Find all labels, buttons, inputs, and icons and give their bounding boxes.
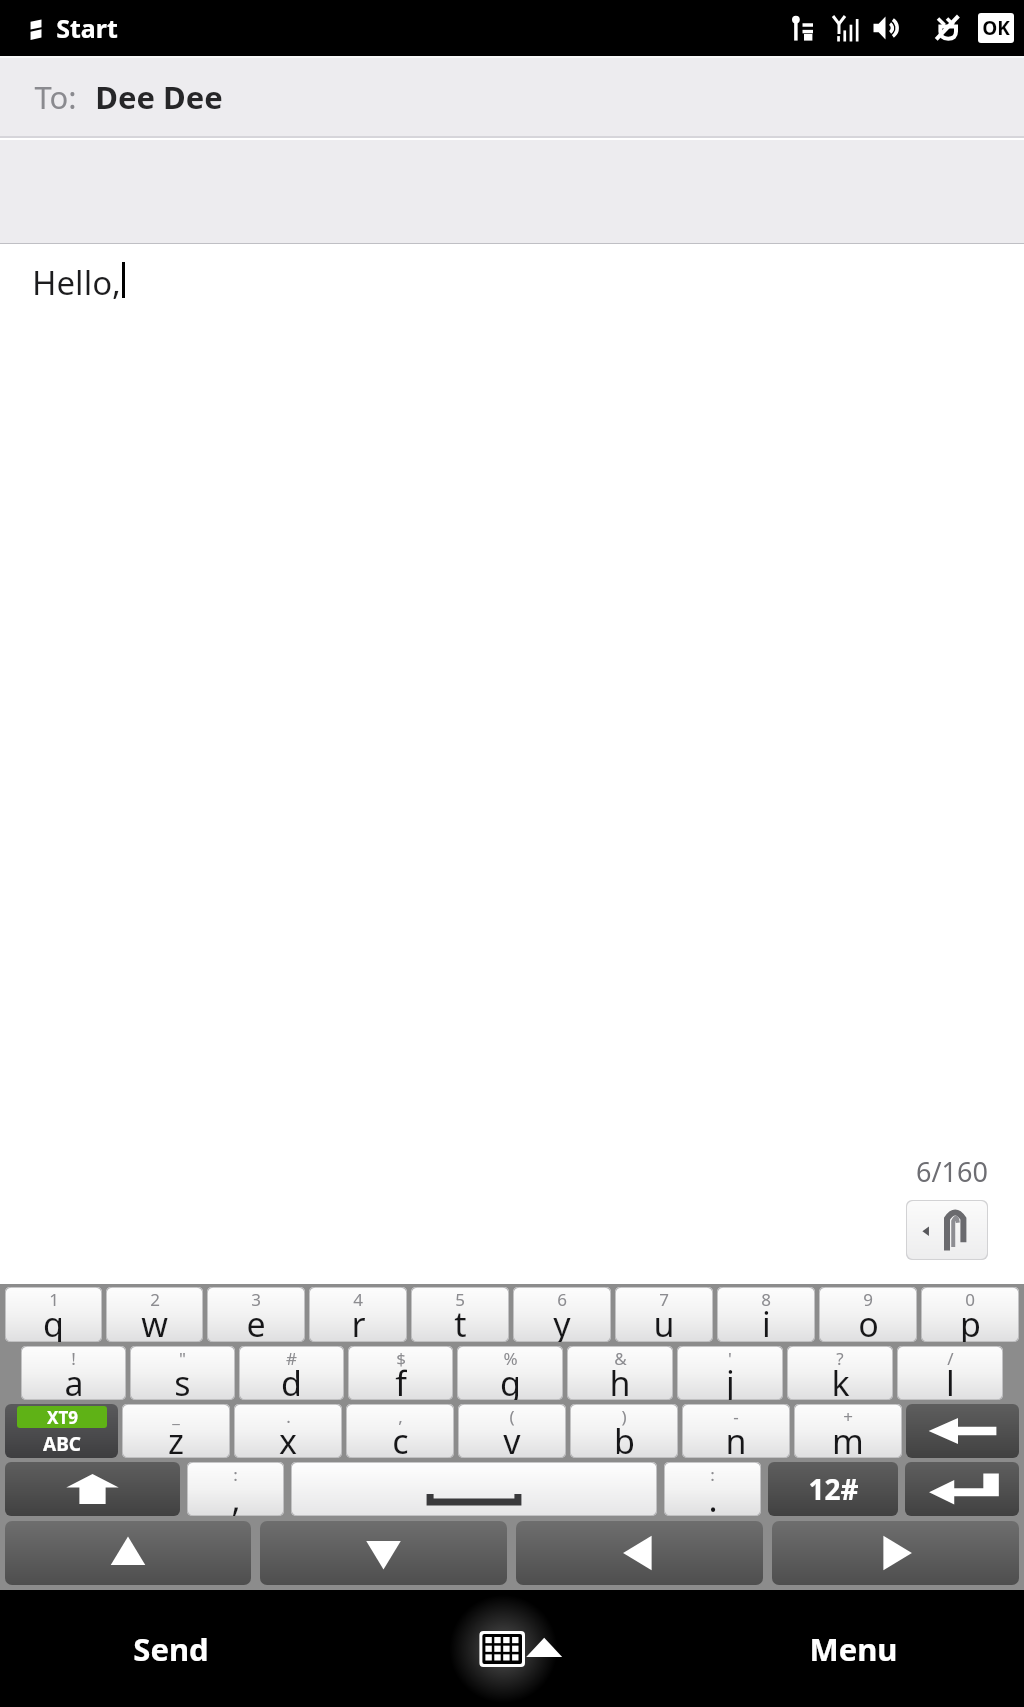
button[interactable]: _ — [122, 1404, 230, 1458]
button[interactable]: % — [457, 1346, 563, 1400]
staticText: ABC — [43, 1431, 81, 1457]
button[interactable]: Battery — [930, 11, 964, 45]
staticText: q — [43, 1301, 64, 1342]
staticText: c — [392, 1418, 409, 1458]
button[interactable]: Keyboard — [342, 1590, 683, 1707]
staticText: Hello, — [32, 260, 121, 305]
button[interactable]: ' — [677, 1346, 783, 1400]
staticText: f — [395, 1360, 407, 1400]
staticText: 6/160 — [916, 1153, 988, 1190]
staticText: 7 — [659, 1288, 669, 1311]
button[interactable]: OK — [978, 13, 1014, 43]
button[interactable]: Left — [516, 1521, 763, 1585]
button[interactable]: Hello, — [0, 244, 1024, 1284]
staticText: e — [246, 1301, 266, 1342]
staticText: + — [843, 1405, 853, 1428]
staticText: 9 — [863, 1288, 873, 1311]
staticText: 6 — [557, 1288, 567, 1311]
button[interactable]: Backspace — [906, 1404, 1019, 1458]
button[interactable]: , — [346, 1404, 454, 1458]
button[interactable]: ) — [570, 1404, 678, 1458]
button[interactable]: Up — [5, 1521, 251, 1585]
staticText: 12# — [808, 1470, 859, 1508]
staticText: . — [286, 1405, 291, 1428]
staticText: h — [609, 1360, 631, 1400]
button[interactable]: ( — [458, 1404, 566, 1458]
button[interactable]: Enter — [905, 1462, 1019, 1516]
button[interactable]: ! — [21, 1346, 126, 1400]
button[interactable]: Right — [772, 1521, 1019, 1585]
staticText: , — [398, 1405, 403, 1428]
button[interactable]: Send — [0, 1590, 342, 1707]
button[interactable]: Space — [291, 1462, 657, 1516]
button[interactable]: 0 — [921, 1287, 1019, 1342]
staticText: s — [174, 1360, 191, 1400]
button[interactable]: 3 — [207, 1287, 305, 1342]
staticText: ' — [728, 1347, 732, 1370]
staticText: Dee Dee — [95, 76, 223, 118]
button[interactable]: : — [187, 1462, 284, 1516]
staticText: _ — [172, 1405, 180, 1428]
button[interactable]: 5 — [411, 1287, 509, 1342]
staticText: : — [233, 1463, 238, 1486]
button[interactable]: & — [567, 1346, 673, 1400]
button[interactable]: + — [794, 1404, 902, 1458]
staticText: n — [725, 1418, 747, 1458]
staticText: d — [281, 1360, 302, 1400]
staticText: l — [946, 1360, 955, 1400]
staticText: j — [726, 1360, 735, 1400]
staticText: $ — [396, 1347, 406, 1370]
staticText: 3 — [251, 1288, 261, 1311]
button[interactable]: : — [664, 1462, 761, 1516]
button[interactable]: $ — [348, 1346, 453, 1400]
staticText: # — [286, 1347, 297, 1370]
staticText: . — [708, 1476, 718, 1516]
staticText: u — [653, 1301, 675, 1342]
staticText: / — [947, 1347, 954, 1370]
staticText: r — [351, 1301, 366, 1342]
button[interactable]: Attach — [906, 1200, 988, 1260]
button[interactable]: Start — [10, 9, 48, 47]
button[interactable]: 8 — [717, 1287, 815, 1342]
staticText: 8 — [761, 1288, 771, 1311]
staticText: 1 — [49, 1288, 59, 1311]
button[interactable]: Menu — [683, 1590, 1024, 1707]
button[interactable]: 9 — [819, 1287, 917, 1342]
button[interactable]: 1 — [5, 1287, 102, 1342]
button[interactable]: Shift — [5, 1462, 180, 1516]
button[interactable]: " — [130, 1346, 235, 1400]
staticText: 5 — [455, 1288, 465, 1311]
staticText: Menu — [809, 1628, 898, 1670]
button[interactable]: XT9 ABC — [5, 1404, 118, 1458]
staticText: OK — [982, 15, 1010, 41]
staticText: b — [614, 1418, 635, 1458]
staticText: 4 — [353, 1288, 363, 1311]
button[interactable]: 12# — [768, 1462, 898, 1516]
button[interactable]: 7 — [615, 1287, 713, 1342]
staticText: Send — [133, 1628, 209, 1670]
staticText: 2 — [150, 1288, 160, 1311]
staticText: o — [858, 1301, 879, 1342]
button[interactable]: - — [682, 1404, 790, 1458]
button[interactable]: # — [239, 1346, 344, 1400]
button[interactable]: Signal — [828, 11, 862, 45]
button[interactable]: To: — [0, 58, 1024, 136]
staticText: k — [831, 1360, 850, 1400]
button[interactable]: 4 — [309, 1287, 407, 1342]
button[interactable]: / — [897, 1346, 1003, 1400]
button[interactable]: 6 — [513, 1287, 611, 1342]
button[interactable]: Connectivity — [784, 11, 818, 45]
staticText: Start — [56, 11, 118, 45]
button[interactable]: Down — [260, 1521, 507, 1585]
staticText: , — [231, 1476, 241, 1516]
staticText: t — [454, 1301, 467, 1342]
button[interactable]: 2 — [106, 1287, 203, 1342]
button[interactable]: . — [234, 1404, 342, 1458]
staticText: x — [279, 1418, 297, 1458]
staticText: v — [503, 1418, 521, 1458]
staticText: a — [64, 1360, 84, 1400]
staticText: ? — [836, 1347, 844, 1370]
button[interactable]: Volume — [870, 11, 904, 45]
button[interactable]: ? — [787, 1346, 893, 1400]
